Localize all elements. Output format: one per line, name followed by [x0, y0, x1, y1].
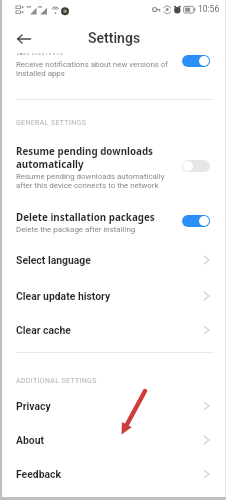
button[interactable]: Back: [12, 27, 35, 50]
staticText: About: [16, 434, 45, 446]
staticText: 10:56: [198, 4, 220, 14]
staticText: Privacy: [16, 400, 51, 412]
staticText: automatically: [16, 158, 84, 171]
button[interactable]: Toggle: [182, 160, 210, 172]
staticText: after this device connects to the networ…: [16, 181, 159, 190]
staticText: Settings: [88, 30, 141, 46]
staticText: Clear cache: [16, 324, 71, 336]
staticText: ADDITIONAL SETTINGS: [16, 377, 97, 385]
staticText: Delete the package after installing: [16, 225, 136, 234]
staticText: GENERAL SETTINGS: [16, 119, 87, 127]
staticText: Feedback: [16, 468, 62, 480]
staticText: Receive notifications about new versions…: [16, 60, 169, 69]
button[interactable]: About: [0, 423, 226, 457]
staticText: Delete installation packages: [16, 211, 155, 224]
staticText: Clear update history: [16, 290, 111, 302]
staticText: installed apps: [16, 69, 65, 78]
button[interactable]: Select language: [0, 243, 226, 277]
button[interactable]: Toggle: [182, 215, 210, 227]
button[interactable]: Clear cache: [0, 313, 226, 347]
staticText: Resume pending downloads: [16, 145, 154, 158]
button[interactable]: Toggle: [182, 55, 210, 67]
staticText: Resume pending downloads automatically: [16, 172, 165, 181]
staticText: Select language: [16, 254, 91, 266]
button[interactable]: Clear update history: [0, 279, 226, 313]
button[interactable]: Privacy: [0, 389, 226, 423]
button[interactable]: Feedback: [0, 457, 226, 491]
